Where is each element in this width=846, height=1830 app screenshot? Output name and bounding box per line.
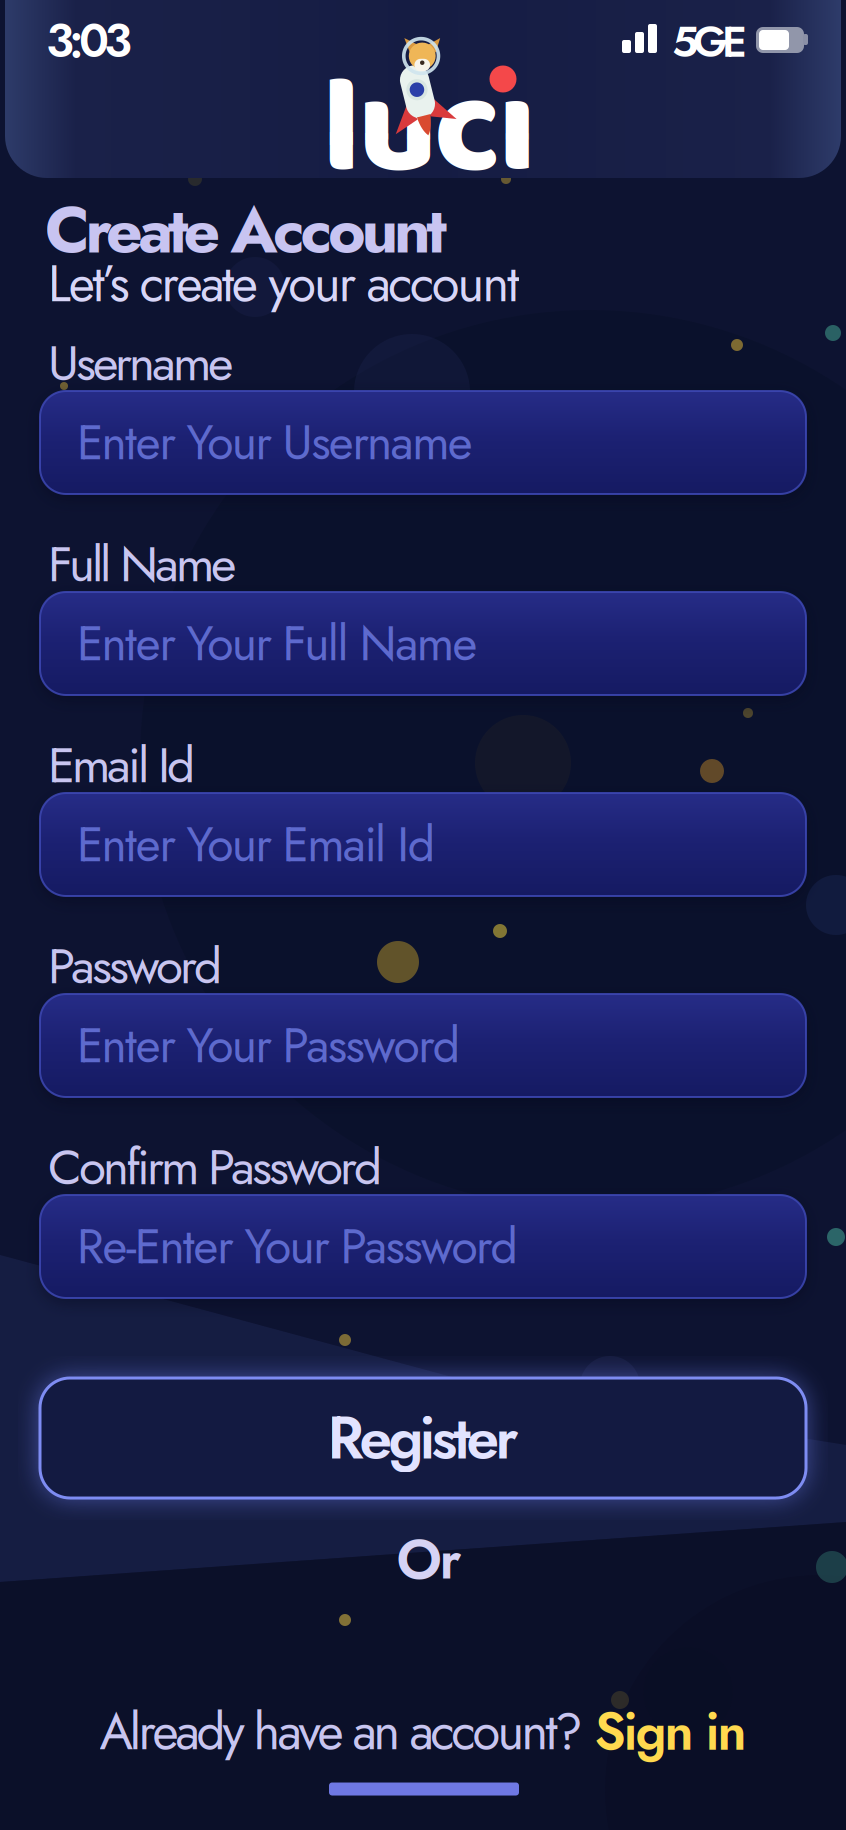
staticText: Or — [396, 1518, 461, 1599]
button[interactable]: Enter Your Full Name — [40, 592, 806, 695]
staticText: Register — [327, 1396, 518, 1480]
staticText: Enter Your Username — [77, 408, 473, 477]
staticText: Confirm Password — [48, 1131, 382, 1203]
staticText: Sign in — [594, 1694, 746, 1769]
staticText: 5GE — [672, 11, 747, 73]
button[interactable]: Enter Your Email Id — [40, 793, 806, 896]
staticText: Email Id — [48, 729, 195, 801]
staticText: lucı — [322, 22, 536, 240]
staticText: Re-Enter Your Password — [77, 1212, 518, 1281]
staticText: Let’s create your account — [48, 247, 519, 320]
staticText: Enter Your Email Id — [77, 810, 435, 879]
staticText: Password — [48, 930, 222, 1002]
button[interactable]: Sign in — [594, 1694, 746, 1769]
staticText: Already have an account? — [99, 1695, 582, 1768]
staticText: Enter Your Password — [77, 1011, 460, 1080]
staticText: Username — [48, 327, 233, 399]
staticText: Enter Your Full Name — [77, 609, 477, 678]
button[interactable]: Enter Your Username — [40, 391, 806, 494]
staticText: Full Name — [48, 528, 236, 600]
staticText: Create Account — [45, 184, 446, 276]
button[interactable]: Register — [40, 1378, 806, 1498]
button[interactable]: Enter Your Password — [40, 994, 806, 1097]
staticText: 3:03 — [46, 7, 132, 74]
button[interactable]: Re-Enter Your Password — [40, 1195, 806, 1298]
